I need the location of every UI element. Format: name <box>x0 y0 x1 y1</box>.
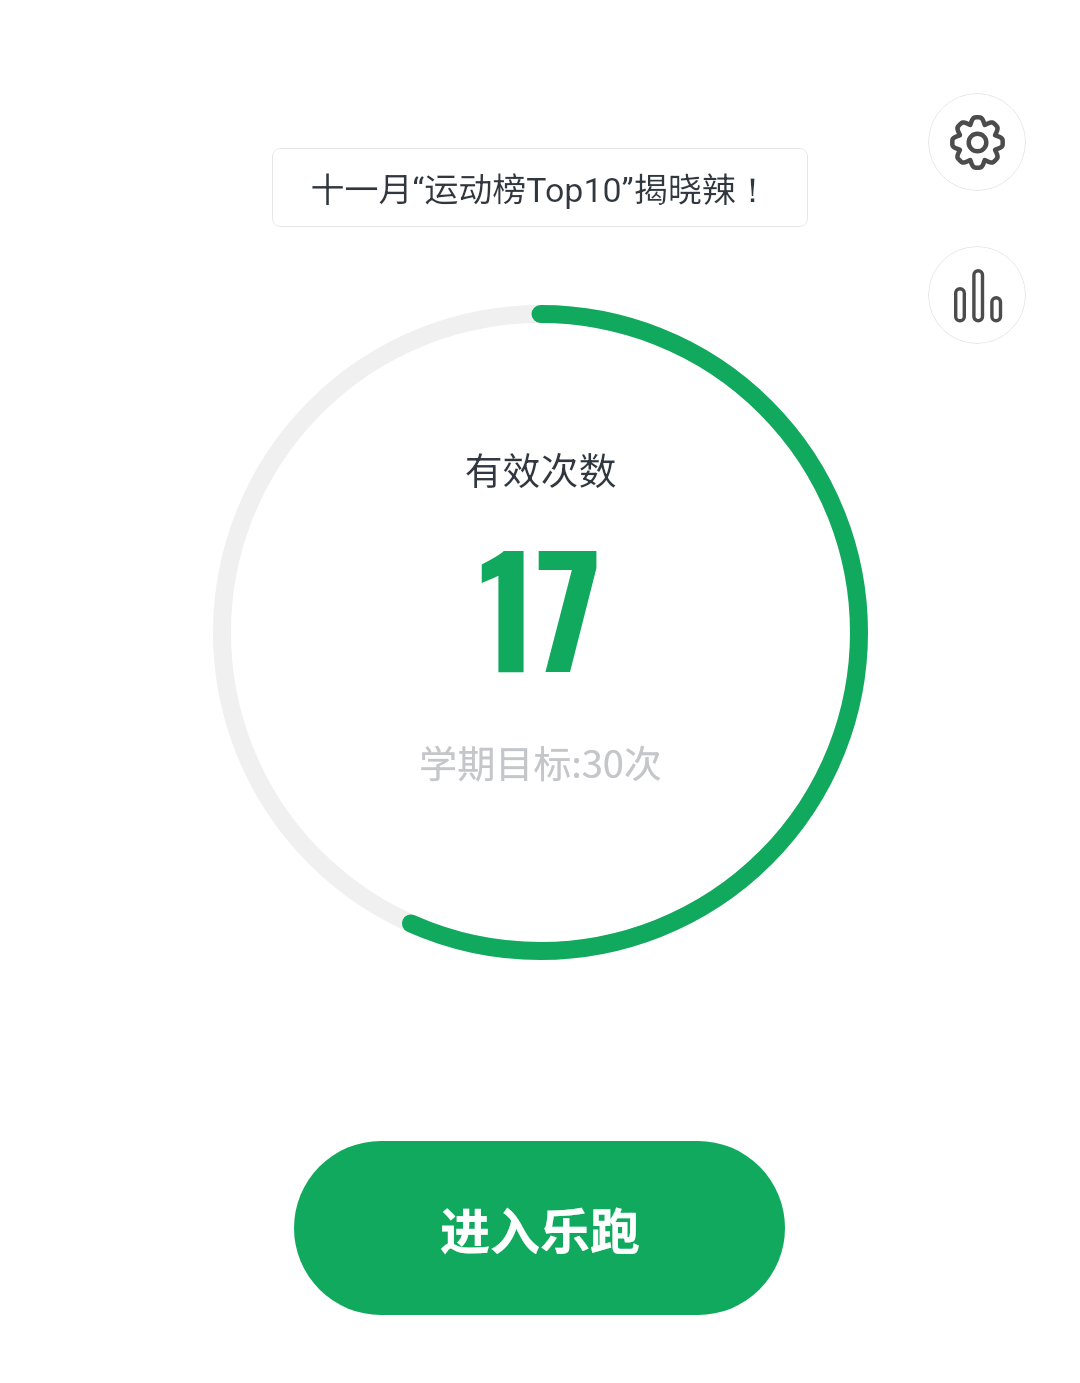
button[interactable]: 进入乐跑 <box>294 1141 785 1315</box>
button[interactable]: 十一月“运动榜Top10”揭晓辣！ <box>272 148 808 227</box>
staticText: 进入乐跑 <box>440 1192 640 1264</box>
staticText: 学期目标:30次 <box>419 734 662 789</box>
staticText: 17 <box>478 493 602 715</box>
staticText: 有效次数 <box>464 441 617 496</box>
staticText: 十一月“运动榜Top10”揭晓辣！ <box>310 163 770 213</box>
button[interactable]: Statistics <box>928 246 1026 344</box>
button[interactable]: Settings <box>928 93 1026 191</box>
